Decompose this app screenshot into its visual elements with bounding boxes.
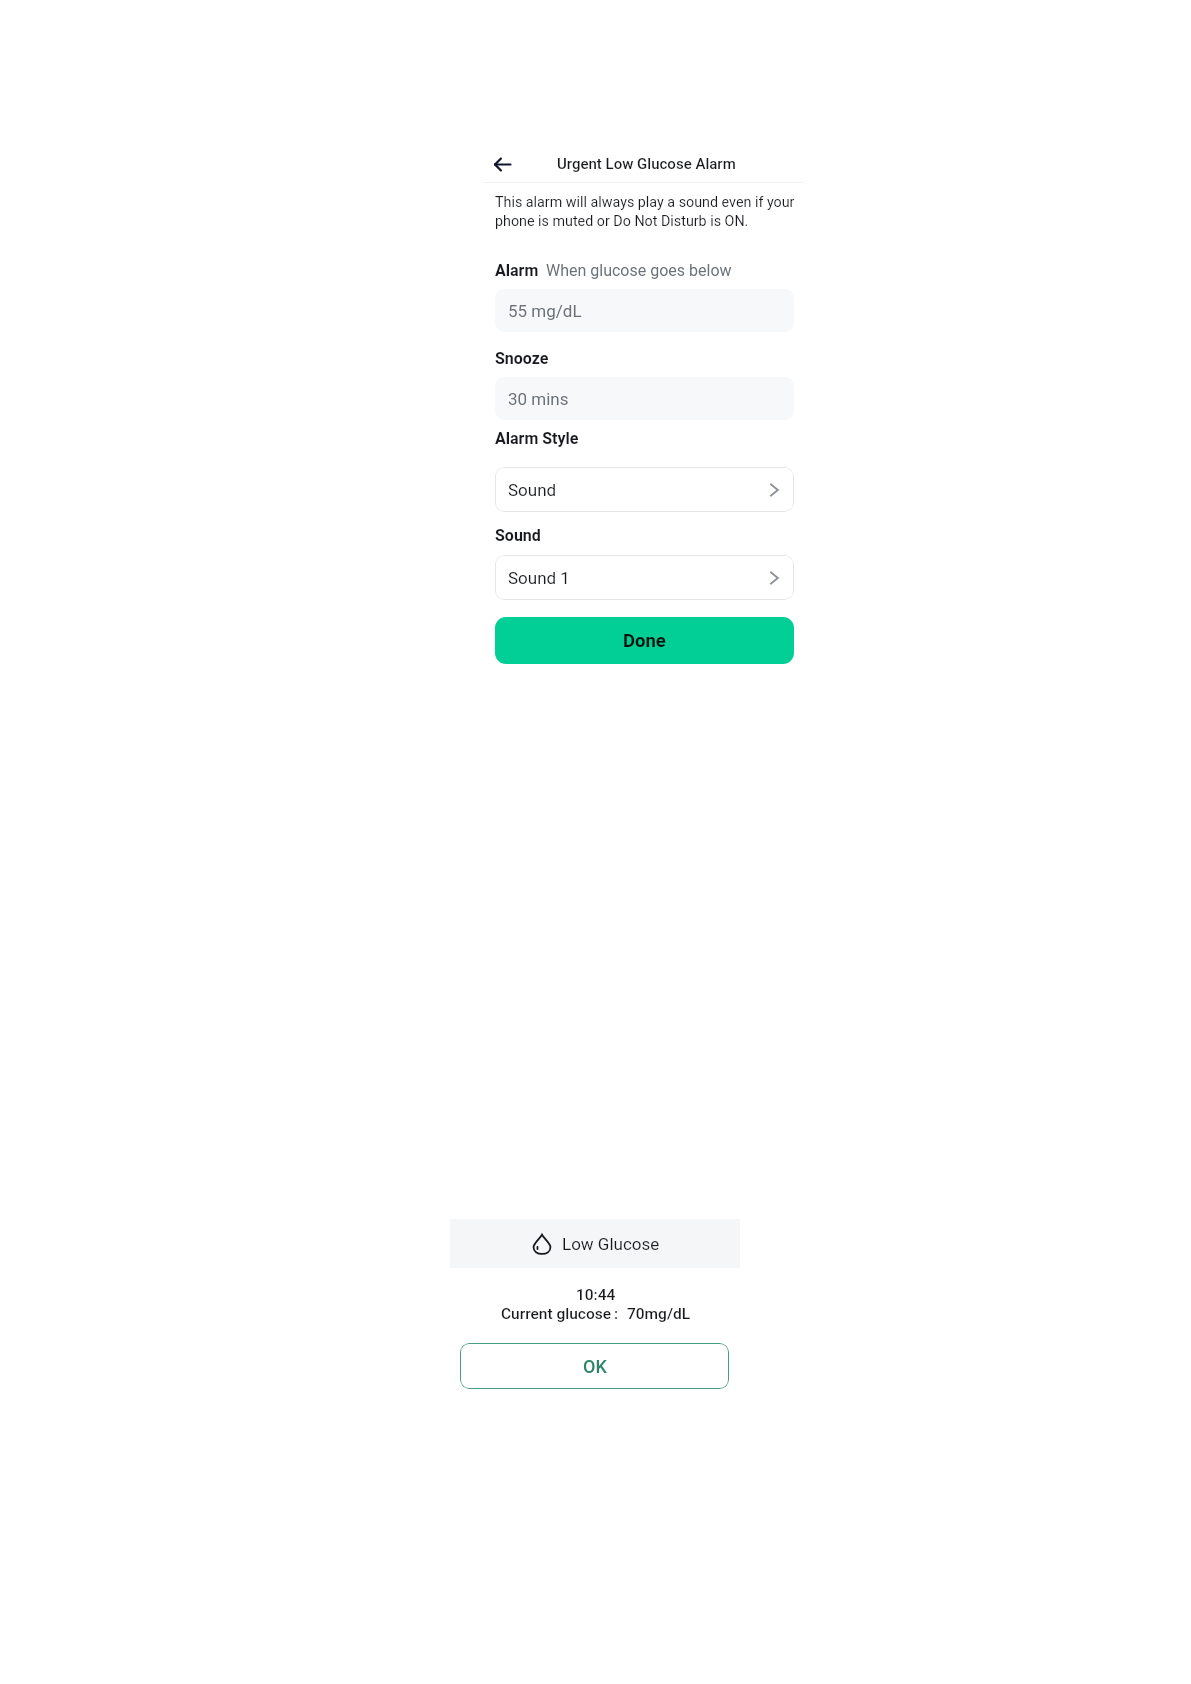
staticText: Snooze: [495, 349, 549, 368]
button[interactable]: 30 mins: [495, 377, 794, 420]
button[interactable]: Back: [487, 149, 517, 179]
staticText: Sound: [508, 480, 557, 500]
staticText: OK: [583, 1356, 607, 1377]
staticText: 55 mg/dL: [508, 301, 582, 321]
staticText: This alarm will always play a sound even…: [495, 194, 815, 229]
staticText: Done: [623, 630, 666, 652]
button[interactable]: Sound: [495, 467, 794, 512]
staticText: Sound: [495, 526, 541, 545]
staticText: Alarm: [495, 261, 539, 280]
staticText: Low Glucose: [562, 1234, 660, 1254]
staticText: 10:44: [576, 1286, 616, 1304]
staticText: Sound 1: [508, 568, 570, 588]
staticText: 70mg/dL: [627, 1305, 691, 1323]
staticText: Current glucose: [501, 1305, 612, 1323]
button[interactable]: Sound 1: [495, 555, 794, 600]
staticText: 30 mins: [508, 389, 569, 409]
staticText: Alarm Style: [495, 429, 579, 448]
staticText: When glucose goes below: [546, 261, 732, 280]
staticText: Urgent Low Glucose Alarm: [557, 155, 736, 173]
button[interactable]: OK: [460, 1343, 729, 1389]
button[interactable]: Done: [495, 617, 794, 664]
button[interactable]: 55 mg/dL: [495, 289, 794, 332]
staticText: :: [614, 1305, 619, 1323]
